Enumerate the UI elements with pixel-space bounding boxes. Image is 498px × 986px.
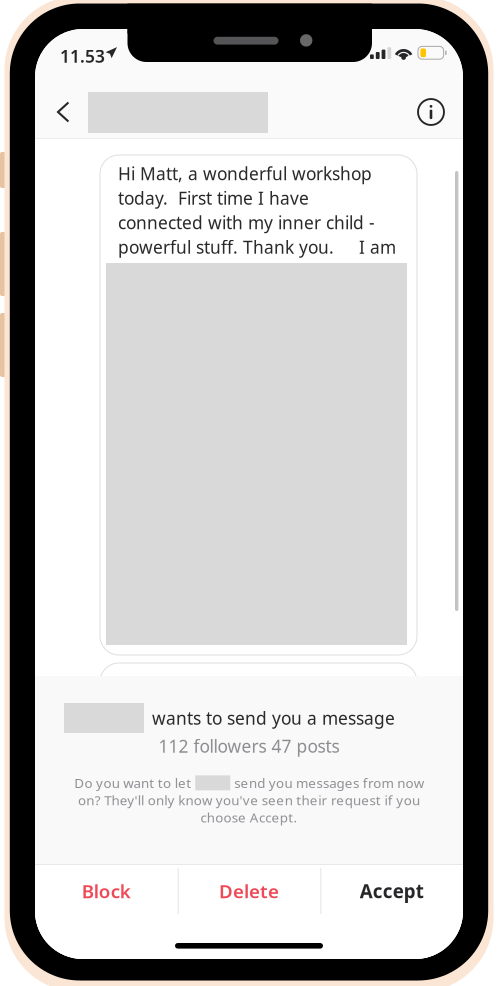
button[interactable]: Accept — [320, 862, 463, 920]
staticText: Delete — [219, 879, 279, 903]
staticText: Accept — [360, 879, 424, 903]
staticText: 112 followers 47 posts — [158, 734, 339, 757]
staticText: send you messages from now — [234, 774, 424, 792]
button[interactable]: Block — [35, 862, 178, 920]
staticText: choose Accept. — [201, 808, 297, 826]
staticText: Hi Matt, a wonderful workshop today. Fir… — [118, 162, 396, 259]
staticText: Do you want to let — [74, 774, 191, 792]
staticText: on? They'll only know you've seen their … — [78, 791, 420, 809]
staticText: Block — [82, 879, 131, 903]
button[interactable]: Delete — [178, 862, 320, 920]
staticText: 11.53 — [60, 44, 105, 67]
button[interactable]: Back — [46, 90, 90, 134]
button[interactable]: Conversation details — [410, 90, 452, 134]
staticText: wants to send you a message — [152, 706, 395, 729]
